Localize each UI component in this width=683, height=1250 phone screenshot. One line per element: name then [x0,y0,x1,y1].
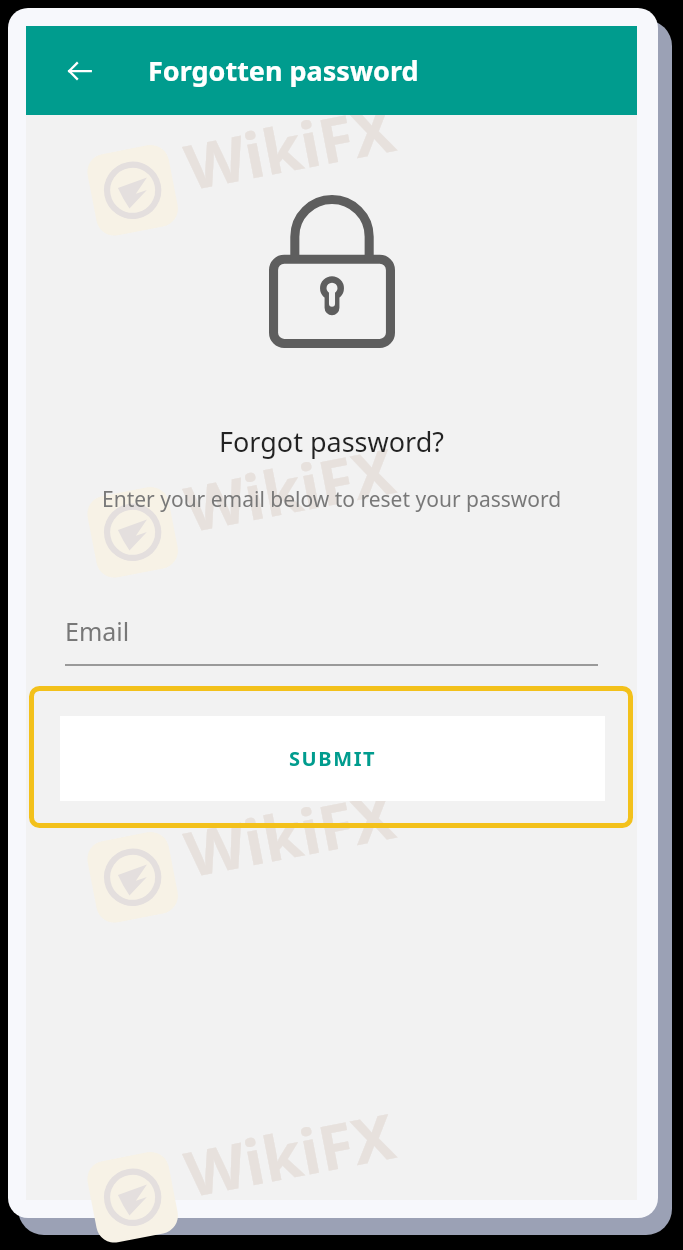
staticText: WikiFX [178,427,402,550]
button[interactable]: Email [65,604,598,666]
staticText: SUBMIT [289,745,377,772]
staticText: WikiFX [178,85,402,208]
staticText: Email [65,614,130,648]
staticText: Forgot password? [219,423,445,460]
staticText: Enter your email below to reset your pas… [102,485,562,514]
staticText: Forgotten password [148,52,419,89]
staticText: WikiFX [178,1092,402,1215]
staticText: WikiFX [178,772,402,895]
button[interactable]: SUBMIT [29,686,633,828]
button[interactable]: Back [53,44,107,98]
